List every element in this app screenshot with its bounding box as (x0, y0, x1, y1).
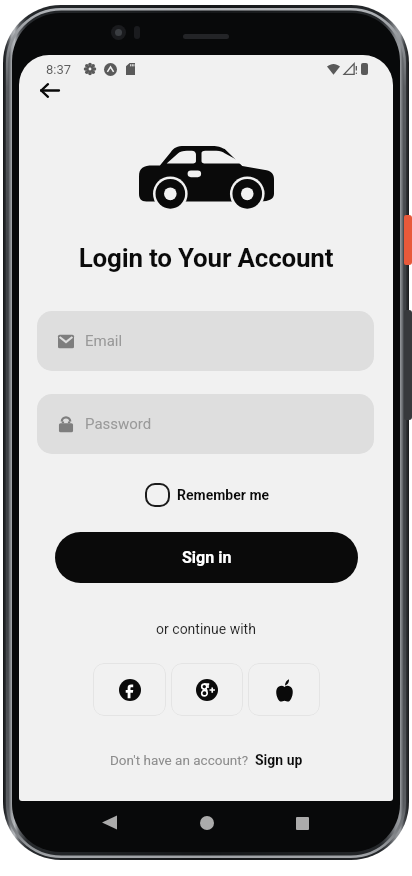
button[interactable]: Sign in with Google (171, 663, 243, 716)
button[interactable]: Sign in with Facebook (93, 663, 166, 716)
button[interactable]: Home (200, 816, 214, 830)
button[interactable]: Sign in with Apple (248, 663, 320, 716)
button[interactable]: Back (102, 815, 117, 830)
staticText: 8:37 (46, 62, 72, 77)
staticText: Email (85, 332, 123, 350)
button[interactable]: Email (37, 311, 374, 371)
button[interactable]: Sign in (55, 532, 358, 583)
button[interactable]: Recents (296, 817, 309, 830)
button[interactable]: Navigate back (30, 71, 68, 109)
button[interactable]: Remember me (145, 483, 270, 507)
staticText: or continue with (19, 621, 393, 637)
button[interactable]: Sign up (255, 752, 303, 768)
staticText: Sign up (255, 752, 303, 768)
button[interactable]: Password (37, 394, 374, 454)
staticText: Sign in (182, 548, 232, 567)
staticText: Login to Your Account (19, 243, 393, 273)
staticText: Remember me (177, 487, 270, 503)
staticText: Don't have an account? (110, 752, 255, 768)
staticText: Password (85, 415, 152, 433)
